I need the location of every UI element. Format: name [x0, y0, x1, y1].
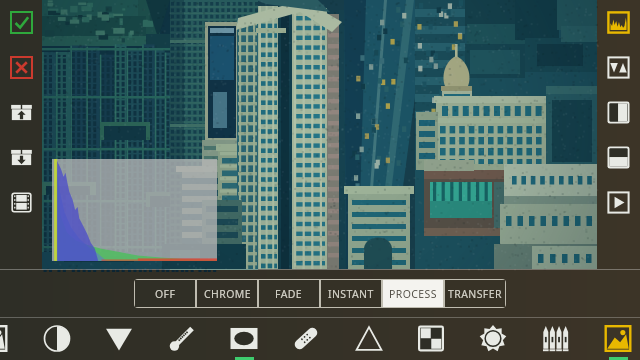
button[interactable]: Sharpen — [350, 318, 408, 360]
button[interactable]: Histogram — [597, 0, 640, 45]
staticText: FADE — [275, 287, 303, 301]
button[interactable]: TRANSFER — [444, 279, 506, 308]
staticText: INSTANT — [328, 287, 374, 301]
button[interactable]: Exposure — [118, 318, 176, 360]
button[interactable]: Crayons — [524, 318, 582, 360]
button[interactable]: Compare — [597, 45, 640, 90]
button[interactable]: FADE — [258, 279, 320, 308]
button[interactable]: OFF — [134, 279, 196, 308]
button[interactable]: Healing — [292, 318, 350, 360]
button[interactable]: Play — [597, 180, 640, 225]
staticText: TRANSFER — [448, 287, 502, 301]
button[interactable]: Split vertical — [597, 90, 640, 135]
button[interactable]: CHROME — [196, 279, 258, 308]
staticText: OFF — [155, 287, 176, 301]
button[interactable]: INSTANT — [320, 279, 382, 308]
button[interactable]: Accept — [0, 0, 42, 45]
button[interactable]: Filters — [582, 318, 640, 360]
staticText: PROCESS — [389, 287, 437, 301]
button[interactable]: Cancel — [0, 45, 42, 90]
button[interactable]: Split horizontal — [597, 135, 640, 180]
button[interactable]: Contrast — [59, 318, 118, 360]
staticText: CHROME — [204, 287, 251, 301]
button[interactable]: Vignette — [234, 318, 292, 360]
button[interactable]: Photo — [0, 318, 59, 360]
button[interactable]: Export — [0, 90, 42, 135]
button[interactable]: Film — [0, 180, 42, 225]
button[interactable]: Import — [0, 135, 42, 180]
button[interactable]: Checkerboard — [408, 318, 466, 360]
button[interactable]: PROCESS — [382, 279, 444, 308]
button[interactable]: White balance — [176, 318, 234, 360]
button[interactable]: Brightness — [466, 318, 524, 360]
